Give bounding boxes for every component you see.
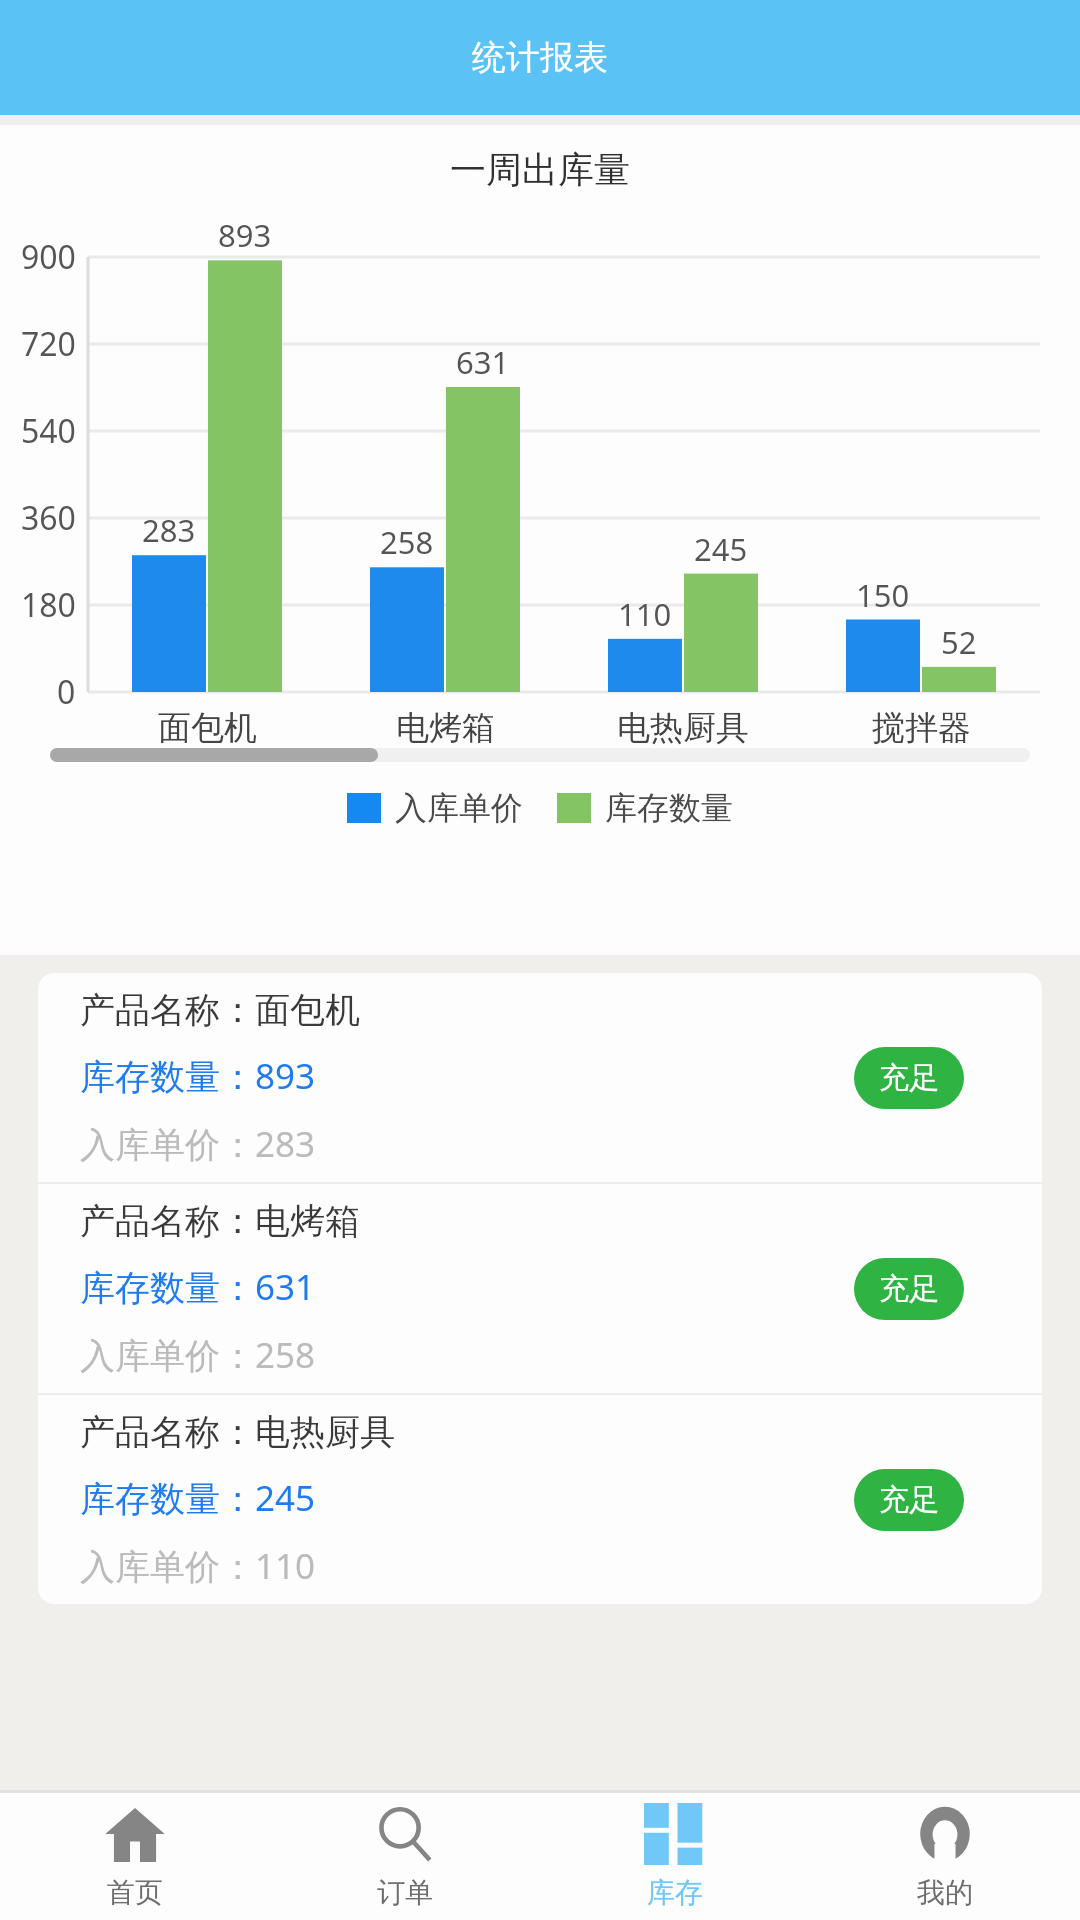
staticText: 库存数量：631: [80, 1263, 316, 1311]
staticText: 充足: [879, 1059, 939, 1097]
staticText: 订单: [377, 1875, 433, 1910]
staticText: 入库单价：283: [80, 1120, 316, 1168]
staticText: 一周出库量: [450, 147, 630, 192]
staticText: 面包机: [158, 707, 257, 749]
staticText: 入库单价：258: [80, 1331, 316, 1379]
staticText: 110: [618, 593, 672, 635]
button[interactable]: 首页: [0, 1793, 270, 1920]
staticText: 库存: [647, 1875, 703, 1910]
staticText: 统计报表: [472, 36, 608, 79]
staticText: 产品名称：电热厨具: [80, 1410, 395, 1454]
staticText: 900: [21, 235, 76, 279]
button[interactable]: 库存: [540, 1793, 810, 1920]
button[interactable]: 充足: [854, 1469, 964, 1531]
button[interactable]: 产品名称：电热厨具: [38, 1395, 1042, 1604]
staticText: 245: [694, 528, 748, 570]
staticText: 电热厨具: [617, 707, 749, 749]
button[interactable]: 产品名称：面包机: [38, 973, 1042, 1182]
staticText: 283: [142, 509, 196, 551]
button[interactable]: 产品名称：电烤箱: [38, 1184, 1042, 1393]
staticText: 52: [941, 621, 977, 663]
staticText: 360: [21, 496, 76, 540]
staticText: 入库单价：110: [80, 1542, 316, 1590]
staticText: 我的: [917, 1875, 973, 1910]
staticText: 电烤箱: [396, 707, 495, 749]
staticText: 150: [856, 574, 910, 616]
staticText: 库存数量：893: [80, 1052, 316, 1100]
staticText: 893: [218, 214, 272, 256]
staticText: 0: [57, 670, 76, 714]
staticText: 180: [21, 583, 76, 627]
staticText: 入库单价: [395, 788, 523, 828]
button[interactable]: 充足: [854, 1047, 964, 1109]
button[interactable]: 订单: [270, 1793, 540, 1920]
staticText: 540: [21, 409, 76, 453]
staticText: 258: [380, 521, 434, 563]
staticText: 库存数量: [605, 788, 733, 828]
button[interactable]: 我的: [810, 1793, 1080, 1920]
staticText: 首页: [107, 1875, 163, 1910]
staticText: 库存数量：245: [80, 1474, 316, 1522]
staticText: 产品名称：面包机: [80, 988, 360, 1032]
staticText: 720: [21, 322, 76, 366]
staticText: 充足: [879, 1270, 939, 1308]
staticText: 搅拌器: [872, 707, 971, 749]
button[interactable]: 充足: [854, 1258, 964, 1320]
staticText: 631: [456, 341, 510, 383]
staticText: 产品名称：电烤箱: [80, 1199, 360, 1243]
staticText: 充足: [879, 1481, 939, 1519]
